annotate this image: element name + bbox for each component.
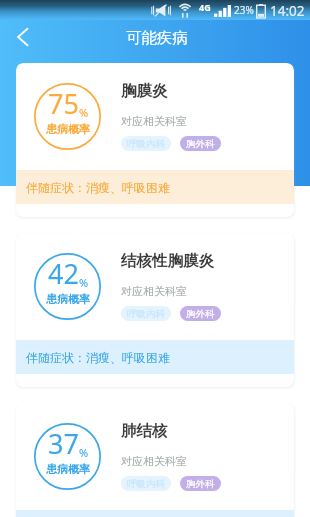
button[interactable]: 胸外科 (180, 476, 221, 491)
staticText: 对应相关科室 (121, 454, 187, 468)
staticText: 呼吸内科 (127, 308, 165, 320)
staticText: 14:02 (270, 2, 305, 20)
staticText: % (79, 105, 89, 120)
staticText: 患病概率 (46, 462, 90, 476)
button[interactable]: 胸外科 (180, 136, 221, 151)
staticText: 伴随症状：消瘦、呼吸困难 (26, 350, 170, 365)
staticText: 42 (48, 255, 79, 292)
staticText: 呼吸内科 (127, 138, 165, 150)
staticText: 对应相关科室 (121, 114, 187, 128)
button[interactable]: 37 (16, 403, 294, 517)
staticText: 可能疾病 (126, 28, 188, 48)
staticText: 胸外科 (186, 138, 215, 150)
staticText: 4G (199, 1, 211, 13)
button[interactable]: 呼吸内科 (121, 306, 171, 321)
staticText: 呼吸内科 (127, 478, 165, 490)
staticText: 患病概率 (46, 292, 90, 306)
staticText: 23% (234, 3, 254, 17)
staticText: % (79, 275, 89, 290)
staticText: 伴随症状：消瘦、呼吸困难 (26, 180, 170, 195)
button[interactable]: 42 (16, 233, 294, 387)
staticText: 75 (48, 85, 79, 122)
staticText: 肺结核 (121, 421, 168, 441)
staticText: 患病概率 (46, 122, 90, 136)
staticText: 对应相关科室 (121, 284, 187, 298)
staticText: 胸膜炎 (121, 81, 168, 101)
button[interactable]: 呼吸内科 (121, 476, 171, 491)
button[interactable]: Back (5, 20, 39, 54)
button[interactable]: 75 (16, 63, 294, 217)
staticText: 37 (48, 425, 79, 462)
staticText: 胸外科 (186, 478, 215, 490)
staticText: 胸外科 (186, 308, 215, 320)
staticText: 结核性胸膜炎 (121, 251, 214, 271)
button[interactable]: 胸外科 (180, 306, 221, 321)
button[interactable]: 呼吸内科 (121, 136, 171, 151)
staticText: % (79, 445, 89, 460)
